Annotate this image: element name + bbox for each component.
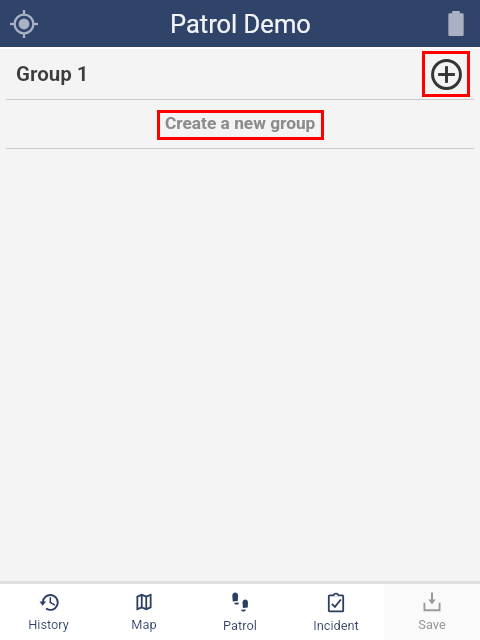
staticText: Map xyxy=(131,617,157,632)
staticText: Incident xyxy=(313,618,359,633)
staticText: Group 1 xyxy=(16,62,89,86)
staticText: Patrol Demo xyxy=(170,9,311,39)
button[interactable]: Patrol xyxy=(192,584,288,640)
button[interactable]: History xyxy=(0,584,96,640)
button[interactable]: Battery status xyxy=(440,8,472,40)
button[interactable]: Create a new group xyxy=(157,110,324,140)
button[interactable]: Incident xyxy=(288,584,384,640)
button[interactable]: Save xyxy=(384,584,480,640)
button[interactable]: Map xyxy=(96,584,192,640)
staticText: History xyxy=(28,617,69,632)
button[interactable]: GPS location xyxy=(2,2,46,46)
button[interactable]: Add group xyxy=(422,51,470,97)
staticText: Patrol xyxy=(223,618,257,633)
staticText: Save xyxy=(418,617,446,632)
staticText: Create a new group xyxy=(165,113,316,133)
